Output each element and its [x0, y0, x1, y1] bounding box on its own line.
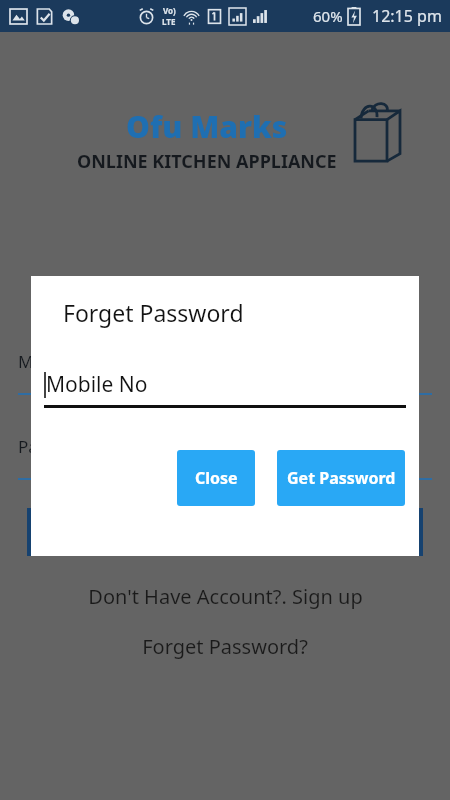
button[interactable]: Sign In — [27, 508, 423, 556]
button[interactable]: Mobile No — [44, 360, 406, 408]
staticText: Mobile No — [18, 350, 101, 373]
staticText: LTE — [162, 16, 176, 27]
staticText: Forget Password? — [142, 633, 308, 660]
staticText: Password — [18, 435, 95, 458]
staticText: Forget Password — [63, 297, 244, 328]
staticText: 60% — [313, 6, 343, 26]
staticText: ONLINE KITCHEN APPLIANCE — [77, 149, 337, 174]
staticText: Mobile No — [46, 370, 148, 399]
staticText: Don't Have Account?. Sign up — [88, 583, 363, 610]
staticText: 12:15 pm — [372, 5, 442, 27]
button[interactable]: Don't Have Account?. Sign up — [0, 578, 450, 614]
staticText: Ofu Marks — [126, 106, 288, 147]
staticText: Close — [195, 467, 238, 489]
button[interactable]: Get Password — [277, 450, 405, 506]
staticText: Vo) — [163, 5, 176, 16]
button[interactable]: Forget Password? — [0, 628, 450, 664]
staticText: Get Password — [287, 467, 396, 489]
button[interactable]: Close — [177, 450, 255, 506]
